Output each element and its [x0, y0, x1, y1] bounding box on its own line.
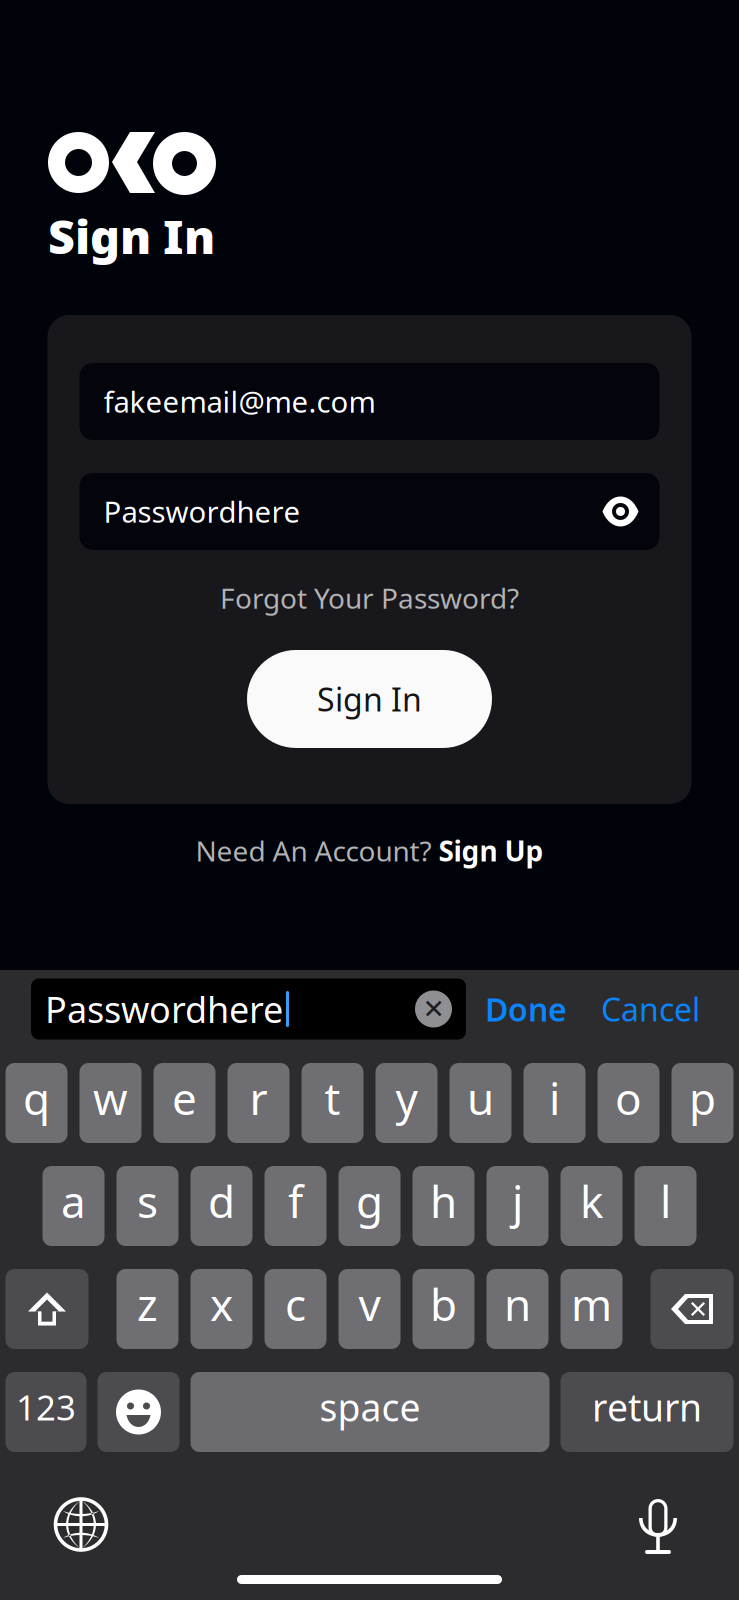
staticText: t — [324, 1069, 340, 1127]
staticText: 123 — [16, 1384, 76, 1430]
staticText: Cancel — [601, 988, 700, 1030]
staticText: a — [61, 1172, 86, 1230]
button[interactable]: v — [338, 1269, 400, 1349]
staticText: i — [549, 1069, 560, 1127]
button[interactable]: o — [597, 1063, 659, 1143]
button[interactable]: a — [42, 1166, 104, 1246]
button[interactable]: q — [5, 1063, 67, 1143]
button[interactable]: f — [264, 1166, 326, 1246]
staticText: b — [430, 1275, 457, 1333]
button[interactable]: d — [190, 1166, 252, 1246]
button[interactable]: p — [671, 1063, 733, 1143]
staticText: g — [356, 1172, 383, 1230]
staticText: e — [172, 1069, 197, 1127]
button[interactable]: h — [412, 1166, 474, 1246]
button[interactable]: s — [116, 1166, 178, 1246]
button[interactable]: e — [153, 1063, 215, 1143]
staticText: h — [430, 1172, 457, 1230]
button[interactable]: return — [560, 1372, 733, 1452]
button[interactable]: n — [486, 1269, 548, 1349]
staticText: Passwordhere — [103, 492, 300, 531]
button[interactable]: 123 — [5, 1372, 86, 1452]
button[interactable]: Emoji keyboard — [97, 1372, 179, 1452]
button[interactable]: y — [375, 1063, 437, 1143]
staticText: r — [249, 1069, 267, 1127]
staticText: d — [208, 1172, 235, 1230]
button[interactable]: x — [190, 1269, 252, 1349]
button[interactable]: Sign Up — [438, 832, 543, 869]
staticText: Sign Up — [438, 832, 543, 869]
staticText: p — [689, 1069, 716, 1127]
staticText: y — [395, 1069, 417, 1127]
staticText: l — [660, 1172, 671, 1230]
staticText: z — [137, 1275, 158, 1333]
staticText: u — [467, 1069, 494, 1127]
button[interactable]: l — [634, 1166, 696, 1246]
button[interactable]: Next keyboard — [55, 1498, 107, 1550]
staticText: x — [210, 1275, 233, 1333]
button[interactable]: m — [560, 1269, 622, 1349]
button[interactable]: k — [560, 1166, 622, 1246]
button[interactable]: w — [79, 1063, 141, 1143]
staticText: m — [571, 1275, 612, 1333]
staticText: return — [592, 1382, 702, 1432]
button[interactable]: c — [264, 1269, 326, 1349]
button[interactable]: space — [190, 1372, 549, 1452]
button[interactable]: Dictation — [639, 1497, 677, 1552]
staticText: v — [358, 1275, 380, 1333]
staticText: k — [580, 1172, 603, 1230]
button[interactable]: Sign In — [247, 650, 492, 748]
staticText: w — [93, 1069, 128, 1127]
button[interactable]: r — [227, 1063, 289, 1143]
button[interactable]: b — [412, 1269, 474, 1349]
staticText: fakeemail@me.com — [103, 382, 375, 421]
staticText: f — [288, 1172, 303, 1230]
button[interactable]: Forgot Your Password? — [220, 580, 519, 616]
staticText: q — [23, 1069, 50, 1127]
button[interactable]: Done — [485, 979, 567, 1039]
staticText: o — [615, 1069, 642, 1127]
button[interactable]: Show password — [601, 497, 639, 525]
staticText: ✕ — [422, 994, 444, 1024]
button[interactable]: i — [523, 1063, 585, 1143]
button[interactable]: z — [116, 1269, 178, 1349]
staticText: j — [512, 1172, 523, 1230]
button[interactable]: u — [449, 1063, 511, 1143]
button[interactable]: Clear text — [415, 990, 452, 1027]
staticText: Sign In — [48, 205, 215, 267]
staticText: Forgot Your Password? — [220, 579, 519, 617]
staticText: Done — [485, 988, 567, 1030]
button[interactable]: Cancel — [601, 979, 700, 1039]
button[interactable]: g — [338, 1166, 400, 1246]
staticText: Passwordhere — [45, 985, 283, 1033]
staticText: s — [137, 1172, 158, 1230]
staticText: Need An Account? — [195, 832, 438, 869]
staticText: space — [319, 1382, 420, 1432]
staticText: Sign In — [317, 678, 422, 720]
button[interactable]: j — [486, 1166, 548, 1246]
staticText: c — [285, 1275, 306, 1333]
button[interactable]: Shift — [5, 1269, 88, 1349]
button[interactable]: t — [301, 1063, 363, 1143]
staticText: n — [504, 1275, 531, 1333]
button[interactable]: Delete — [650, 1269, 733, 1349]
